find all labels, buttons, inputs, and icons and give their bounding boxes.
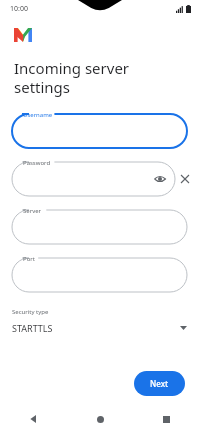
button[interactable]: Port xyxy=(12,258,187,292)
staticText: 10:00 xyxy=(10,4,28,14)
button[interactable]: Next xyxy=(134,371,185,396)
button[interactable]: Show password xyxy=(153,172,167,186)
button[interactable]: Security type xyxy=(0,308,199,334)
button[interactable]: Home xyxy=(67,406,133,432)
staticText: Username xyxy=(23,111,53,119)
staticText: Next xyxy=(150,378,169,389)
staticText: Security type xyxy=(12,308,49,316)
button[interactable]: Recent apps xyxy=(133,406,199,432)
staticText: STARTTLS xyxy=(12,322,180,334)
button[interactable]: Password xyxy=(12,162,175,196)
staticText: Port xyxy=(23,255,35,263)
staticText: Password xyxy=(23,159,51,167)
button[interactable]: Clear xyxy=(177,171,193,187)
button[interactable]: Username xyxy=(12,114,187,148)
staticText: Incoming server settings xyxy=(14,58,130,97)
button[interactable]: Back xyxy=(0,406,67,432)
staticText: Server xyxy=(23,207,42,215)
button[interactable]: Server xyxy=(12,210,187,244)
